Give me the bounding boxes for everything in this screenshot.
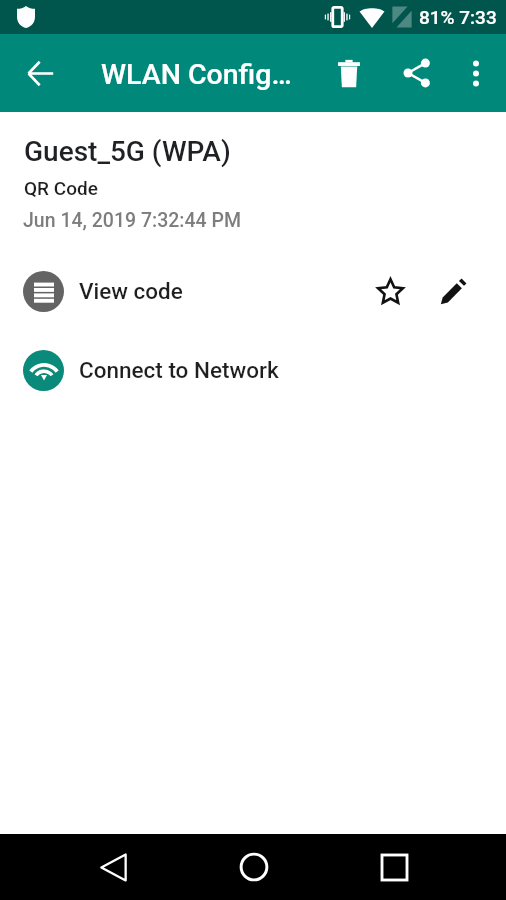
staticText: QR Code — [24, 177, 98, 199]
button[interactable]: Connect to Network — [0, 340, 506, 400]
button[interactable]: Edit — [429, 267, 477, 315]
staticText: 81% 7:33 — [419, 6, 497, 28]
staticText: View code — [79, 278, 183, 304]
button[interactable]: Back — [89, 843, 137, 891]
button[interactable]: Recent apps — [370, 843, 418, 891]
button[interactable]: More options — [448, 45, 504, 101]
staticText: Connect to Network — [79, 357, 279, 383]
button[interactable]: Delete — [321, 45, 377, 101]
button[interactable]: View code — [0, 261, 506, 321]
button[interactable]: Navigate up — [12, 45, 68, 101]
button[interactable]: Home — [230, 843, 278, 891]
staticText: Guest_5G (WPA) — [24, 135, 231, 168]
button[interactable]: Favorite — [366, 267, 414, 315]
button[interactable]: Share — [389, 45, 445, 101]
staticText: Jun 14, 2019 7:32:44 PM — [23, 209, 241, 232]
staticText: WLAN Config… — [101, 58, 306, 91]
